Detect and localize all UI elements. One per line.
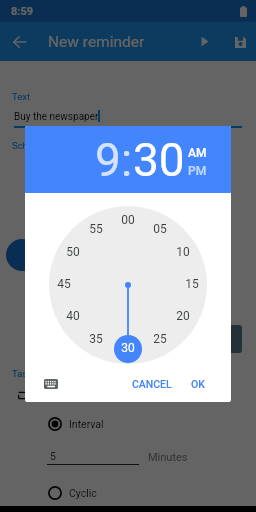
staticText: 00 xyxy=(121,213,135,227)
button[interactable]: Switch to text input xyxy=(38,371,64,397)
button[interactable]: Cyclic xyxy=(48,483,108,503)
button[interactable]: 20 xyxy=(170,303,196,329)
button[interactable]: Run now xyxy=(184,22,224,61)
staticText: 55 xyxy=(89,222,103,236)
staticText: Minutes xyxy=(148,451,188,464)
button[interactable]: 55 xyxy=(83,216,109,242)
staticText: 10 xyxy=(176,245,190,259)
button[interactable]: 35 xyxy=(83,326,109,352)
staticText: 30 xyxy=(121,341,135,355)
button[interactable]: 30 xyxy=(133,133,185,187)
button[interactable]: 00 xyxy=(115,207,141,233)
staticText: AM xyxy=(188,146,207,160)
button[interactable]: PM xyxy=(188,164,207,178)
button[interactable]: 45 xyxy=(51,271,77,297)
button[interactable]: Back xyxy=(0,22,39,61)
button[interactable]: CANCEL xyxy=(126,373,178,395)
staticText: PM xyxy=(188,164,207,178)
staticText: 40 xyxy=(66,309,80,323)
button[interactable]: 15 xyxy=(179,271,205,297)
staticText: Buy the newspaper xyxy=(14,111,99,123)
button[interactable]: OK xyxy=(185,373,211,395)
staticText: 05 xyxy=(153,222,167,236)
button[interactable]: 05 xyxy=(147,216,173,242)
staticText: 30 xyxy=(133,133,185,187)
staticText: 25 xyxy=(153,332,167,346)
staticText: OK xyxy=(191,378,205,390)
button[interactable]: 10 xyxy=(170,239,196,265)
button[interactable]: 50 xyxy=(60,239,86,265)
button[interactable]: 9 xyxy=(95,133,121,187)
button[interactable]: 40 xyxy=(60,303,86,329)
button[interactable]: 25 xyxy=(147,326,173,352)
button[interactable]: 30 xyxy=(115,335,141,361)
staticText: : xyxy=(121,133,133,187)
staticText: Cyclic xyxy=(69,487,97,499)
staticText: New reminder xyxy=(48,33,145,51)
staticText: 8:59 xyxy=(11,5,34,18)
staticText: Interval xyxy=(69,418,104,430)
staticText: 50 xyxy=(66,245,80,259)
staticText: 9 xyxy=(95,133,121,187)
staticText: Schedule xyxy=(12,140,51,151)
staticText: CANCEL xyxy=(132,378,172,390)
button[interactable]: Save xyxy=(224,26,256,58)
staticText: Text xyxy=(12,91,31,102)
button[interactable]: Interval xyxy=(48,414,108,434)
staticText: 5 xyxy=(50,450,56,462)
button[interactable]: AM xyxy=(188,146,207,160)
staticText: 15 xyxy=(185,277,199,291)
staticText: 45 xyxy=(57,277,71,291)
staticText: Task xyxy=(12,368,33,379)
staticText: 35 xyxy=(89,332,103,346)
staticText: 20 xyxy=(176,309,190,323)
